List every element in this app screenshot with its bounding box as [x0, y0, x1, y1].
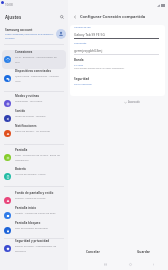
staticText: Seguridad [74, 77, 90, 81]
staticText: Modo de sonido · Melodía [15, 114, 46, 117]
staticText: WPA2 Personal [74, 82, 92, 85]
staticText: Copia y seguridad, información en el tel… [5, 33, 54, 39]
button[interactable]: Sonido [2, 109, 66, 124]
staticText: 10:08 [5, 3, 13, 7]
staticText: Teletrabajo · Mi horario [15, 99, 43, 102]
staticText: Contraseña [74, 42, 87, 45]
staticText: Pantalla [15, 148, 28, 152]
button[interactable]: Dispositivos conectados [2, 69, 66, 88]
button[interactable]: Conexiones [2, 50, 66, 69]
button[interactable]: Buscar [57, 12, 66, 21]
button[interactable]: Guardar [118, 245, 168, 259]
staticText: Banda [74, 58, 84, 62]
button[interactable]: Pantalla bloqueo [2, 221, 66, 236]
button[interactable]: Recientes [101, 260, 110, 269]
staticText: Quick Share · Samsung DeX · Android Auto [15, 74, 61, 82]
staticText: Modos y rutinas [15, 94, 39, 98]
staticText: Notificaciones [15, 124, 37, 128]
staticText: 2.4 GHz [74, 63, 84, 66]
staticText: Guardar [137, 250, 150, 254]
staticText: Fondos · Paleta de colores [15, 196, 46, 199]
button[interactable]: Avanzado [124, 100, 140, 104]
button[interactable]: Inicio [126, 260, 135, 269]
button[interactable]: Atrás [71, 13, 79, 21]
staticText: Cancelar [86, 250, 100, 254]
staticText: Samsung account [5, 28, 33, 32]
staticText: Pantalla inicio [15, 206, 37, 210]
staticText: Ahorro de energía · Carga [15, 172, 46, 175]
staticText: Conexiones [15, 50, 33, 54]
staticText: Batería [15, 167, 26, 171]
staticText: Ajustes [5, 14, 22, 20]
staticText: Sonido [15, 109, 26, 113]
button[interactable]: Notificaciones [2, 124, 66, 139]
staticText: Brillo · Protección de la vista · Barra … [15, 153, 61, 161]
staticText: Tipo de bloqueo de pantalla [15, 226, 48, 229]
staticText: Galaxy Tab S9 FE 5G [74, 32, 105, 36]
staticText: Buscar mi móvil · Administrador de permi… [15, 244, 61, 252]
staticText: Wi-Fi · Bluetooth · Administrador de SIM [15, 55, 61, 63]
staticText: Seguridad y privacidad [15, 239, 50, 243]
button[interactable]: Samsung account [5, 23, 66, 44]
staticText: Nombre de red [74, 26, 91, 29]
staticText: Fondo de pantalla y estilo [15, 191, 54, 195]
staticText: Pantalla bloqueo [15, 221, 41, 225]
button[interactable]: Modos y rutinas [2, 94, 66, 109]
button[interactable]: Cancelar [68, 245, 118, 259]
button[interactable]: Atrás [149, 260, 158, 269]
staticText: Dispositivos conectados [15, 69, 51, 73]
staticText: Barra de estado · No molestar [15, 129, 51, 132]
staticText: Configurar Conexión compartida [80, 14, 146, 19]
button[interactable]: Seguridad y privacidad [2, 239, 66, 258]
button[interactable]: Pantalla inicio [2, 206, 66, 221]
staticText: gvrmjvcygbhG3mj [74, 48, 103, 52]
button[interactable]: Batería [2, 167, 66, 182]
staticText: Otras bandas pueden lograr un mejor rend… [74, 67, 125, 70]
staticText: Diseño · Ajustes de iconos de apps [15, 211, 56, 214]
button[interactable]: Fondo de pantalla y estilo [2, 191, 66, 206]
staticText: Avanzado [128, 100, 140, 104]
button[interactable]: Pantalla [2, 148, 66, 167]
